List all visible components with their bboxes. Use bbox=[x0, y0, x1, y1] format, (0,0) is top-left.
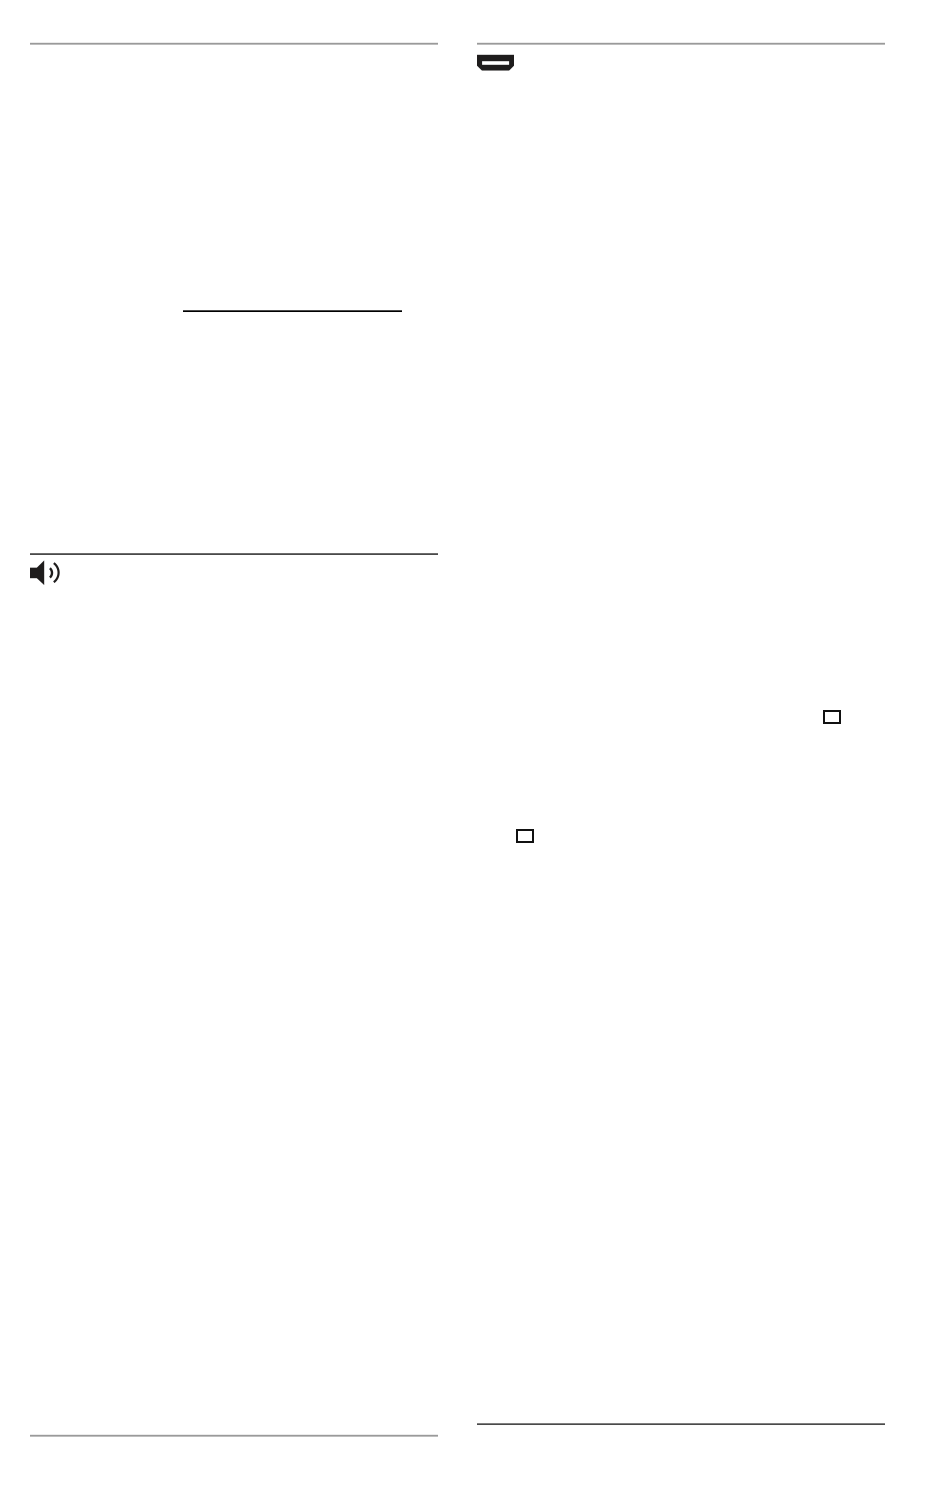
button[interactable]: Volume bbox=[30, 555, 438, 585]
button[interactable]: Display output bbox=[477, 55, 885, 71]
